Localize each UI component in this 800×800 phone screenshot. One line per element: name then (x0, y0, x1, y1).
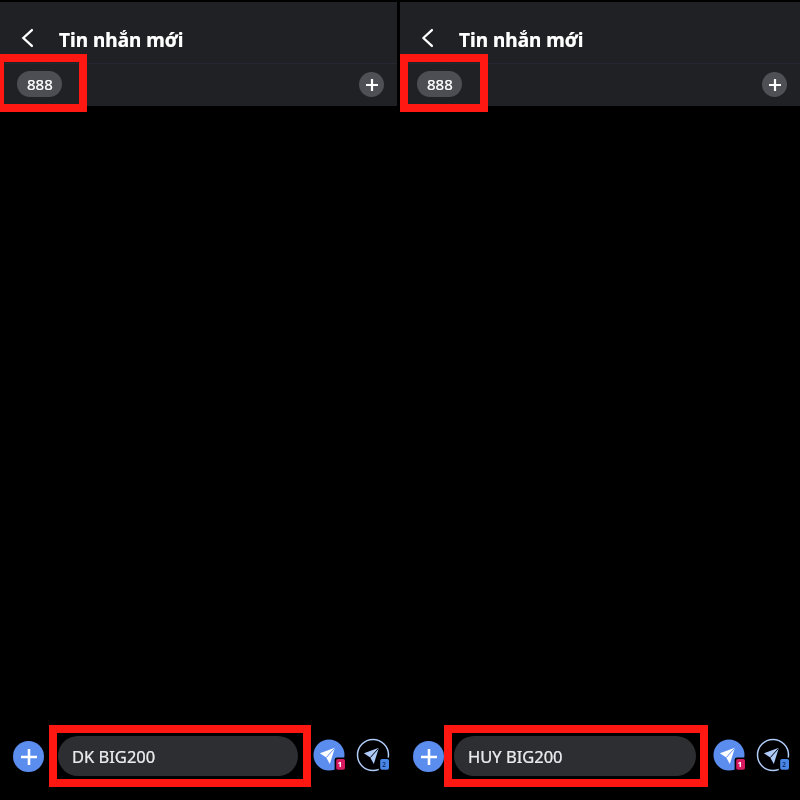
button[interactable]: 888 (417, 71, 462, 97)
staticText: 888 (427, 74, 453, 94)
button[interactable]: DK BIG200 (58, 736, 298, 776)
staticText: 888 (27, 74, 53, 94)
staticText: 2 (382, 760, 387, 770)
button[interactable]: Add recipient (762, 72, 787, 97)
button[interactable]: Send message 1 (313, 739, 347, 772)
button[interactable]: Add recipient (359, 72, 384, 97)
button[interactable]: Send message 1 (713, 739, 747, 772)
staticText: Tin nhắn mới (59, 27, 184, 53)
staticText: DK BIG200 (72, 745, 156, 767)
button[interactable]: Send message 2 (757, 739, 791, 772)
button[interactable]: Send message 2 (357, 739, 391, 772)
button[interactable]: Back (407, 23, 447, 52)
staticText: 1 (738, 760, 743, 770)
button[interactable]: Add attachment (413, 741, 444, 772)
staticText: 2 (782, 760, 787, 770)
button[interactable]: 888 (17, 71, 62, 97)
staticText: 1 (338, 760, 343, 770)
staticText: Tin nhắn mới (459, 27, 584, 53)
button[interactable]: HUY BIG200 (454, 736, 696, 776)
button[interactable]: Add attachment (13, 741, 44, 772)
button[interactable]: Back (7, 23, 47, 52)
staticText: HUY BIG200 (468, 745, 563, 767)
